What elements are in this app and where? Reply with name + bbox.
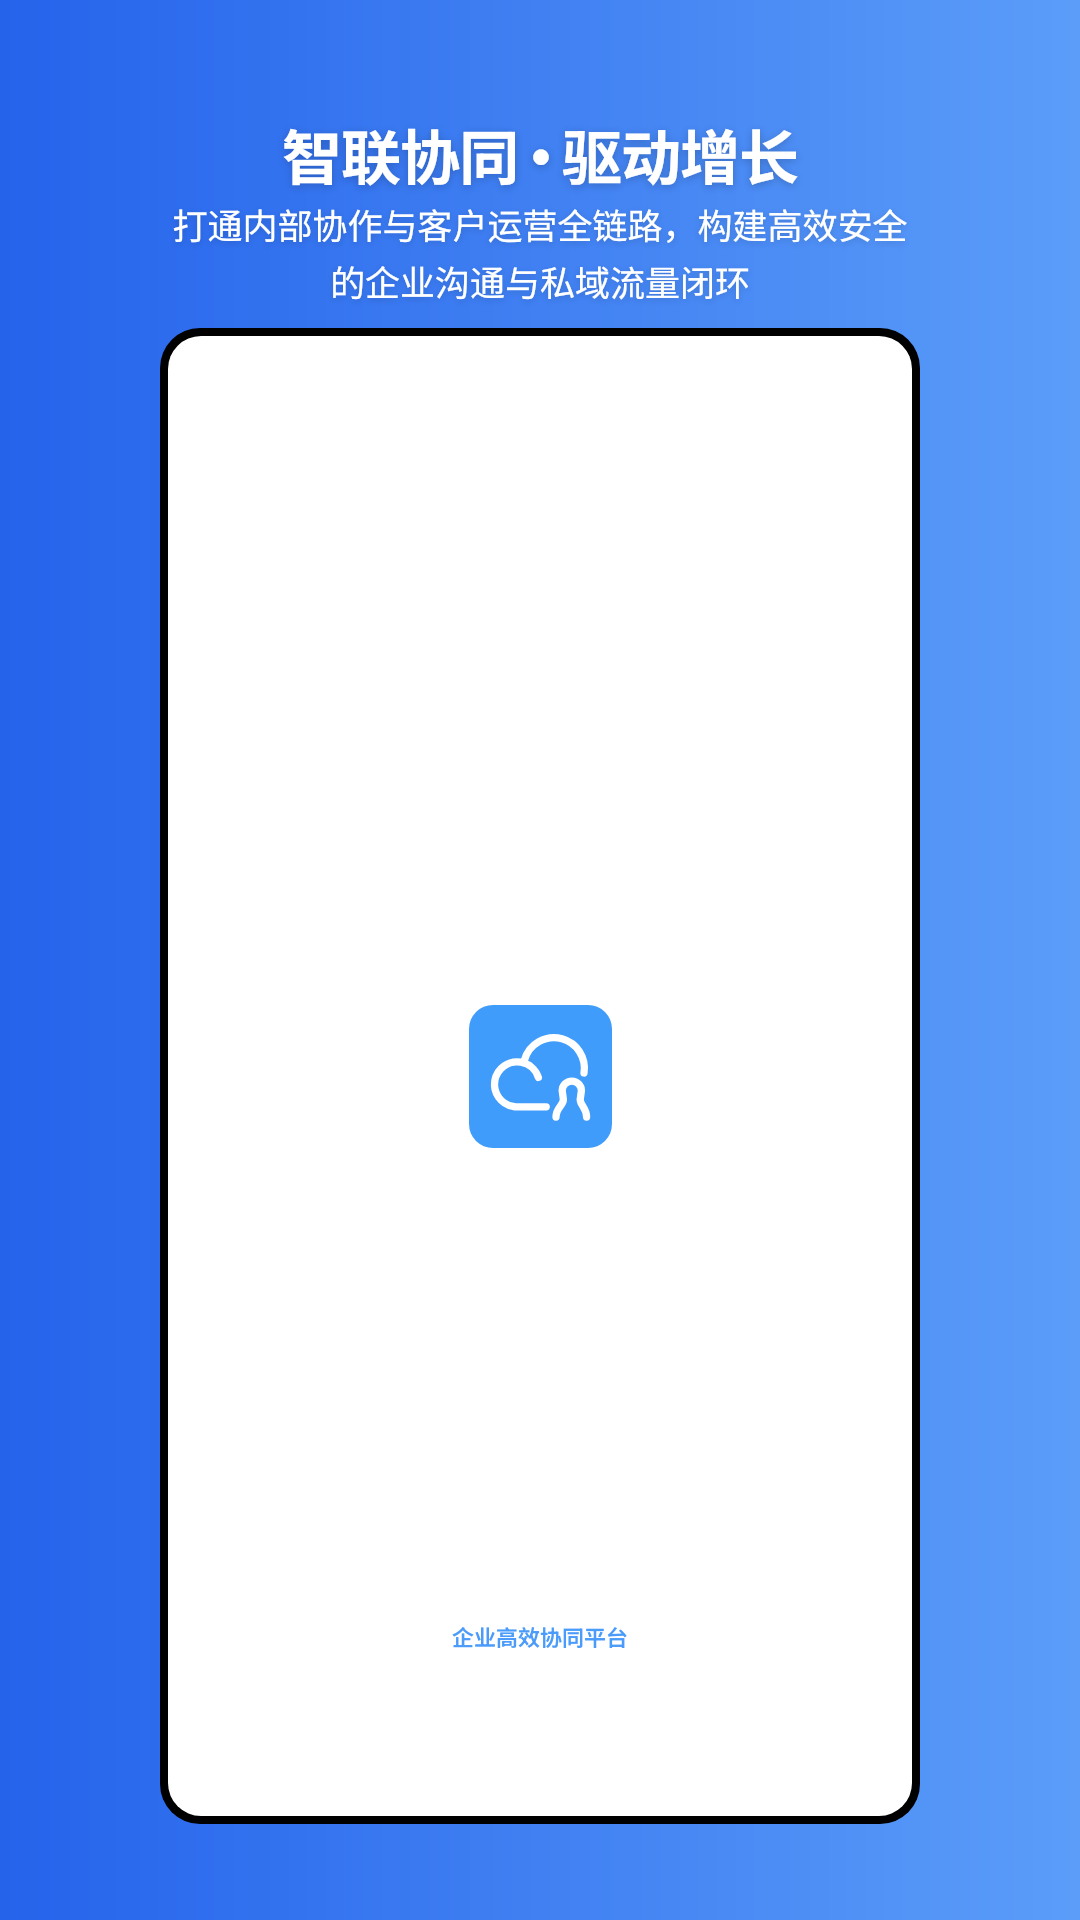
staticText: 企业高效协同平台 [452, 1620, 629, 1652]
button[interactable]: 企业高效协同平台 [440, 1615, 641, 1657]
staticText: 智联协同·驱动增长 [282, 110, 798, 197]
staticText: 打通内部协作与客户运营全链路，构建高效安全 的企业沟通与私域流量闭环 [0, 198, 1080, 306]
button[interactable]: 企业高效协同平台 应用图标 [469, 1005, 612, 1148]
